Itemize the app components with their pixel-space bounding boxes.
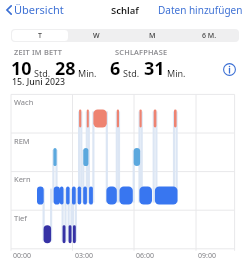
staticText: 6 M.	[202, 31, 217, 41]
staticText: 10	[11, 56, 32, 81]
button[interactable]: Information	[220, 60, 238, 78]
staticText: 31	[144, 56, 165, 81]
staticText: 06:00	[136, 251, 154, 261]
staticText: Kern	[14, 174, 31, 184]
button[interactable]: 6 M.	[181, 30, 238, 41]
button[interactable]: M	[124, 30, 181, 41]
staticText: Std.	[34, 67, 51, 79]
staticText: Std.	[123, 67, 140, 79]
button[interactable]: T	[12, 30, 68, 41]
button[interactable]: W	[68, 30, 124, 41]
staticText: M	[149, 31, 156, 41]
staticText: 15. Juni 2023	[12, 76, 66, 88]
staticText: SCHLAFPHASE	[115, 47, 168, 57]
staticText: 03:00	[75, 251, 93, 261]
staticText: 6	[110, 56, 121, 81]
staticText: Schlaf	[111, 4, 139, 17]
button[interactable]: Übersicht	[4, 0, 66, 19]
staticText: 09:00	[198, 251, 216, 261]
staticText: 28	[55, 56, 76, 81]
button[interactable]: Daten hinzufügen	[155, 0, 246, 20]
staticText: 00:00	[13, 251, 31, 261]
staticText: REM	[14, 136, 30, 146]
staticText: Übersicht	[14, 2, 64, 17]
staticText: Wach	[14, 97, 34, 107]
staticText: T	[38, 31, 42, 41]
staticText: Min.	[167, 67, 186, 79]
staticText: ZEIT IM BETT	[14, 47, 63, 57]
staticText: Daten hinzufügen	[158, 3, 243, 17]
staticText: Tief	[14, 213, 27, 223]
staticText: W	[93, 31, 100, 41]
staticText: Min.	[78, 67, 97, 79]
